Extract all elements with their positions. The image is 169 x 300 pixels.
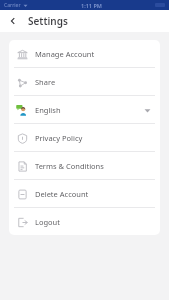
staticText: Manage Account xyxy=(35,49,95,59)
button[interactable]: Terms & Conditions xyxy=(9,152,160,179)
staticText: Logout xyxy=(35,217,60,227)
staticText: Settings xyxy=(28,14,68,28)
staticText: Carrier xyxy=(4,2,21,9)
staticText: Delete Account xyxy=(35,189,89,199)
button[interactable]: Back xyxy=(4,12,22,30)
button[interactable]: Share xyxy=(9,68,160,95)
staticText: Privacy Policy xyxy=(35,133,83,143)
staticText: Terms & Conditions xyxy=(35,161,104,171)
button[interactable]: English xyxy=(9,96,160,123)
button[interactable]: Manage Account xyxy=(9,40,160,67)
button[interactable]: Delete Account xyxy=(9,180,160,207)
other: Change language xyxy=(141,104,153,116)
staticText: 1:11 PM xyxy=(81,2,102,9)
staticText: Share xyxy=(35,77,56,87)
button[interactable]: Logout xyxy=(9,208,160,235)
button[interactable]: Privacy Policy xyxy=(9,124,160,151)
staticText: English xyxy=(35,105,61,115)
